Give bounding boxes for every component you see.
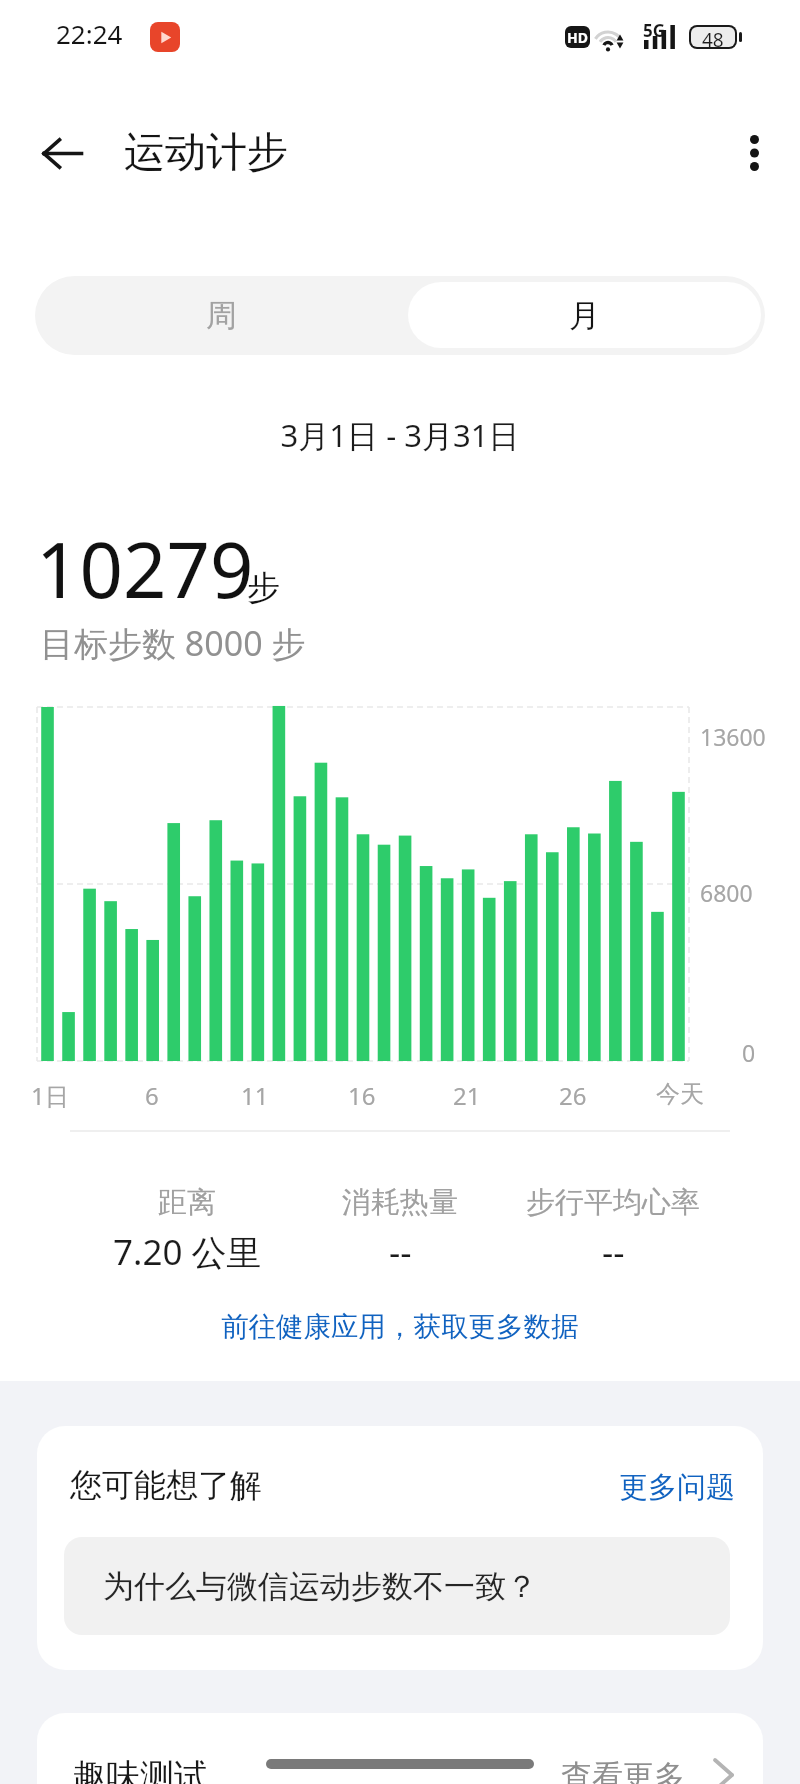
button[interactable]: 更多问题 — [611, 1461, 743, 1514]
staticText: 运动计步 — [124, 127, 288, 179]
staticText: 您可能想了解 — [70, 1465, 262, 1505]
staticText: 趣味测试 — [72, 1755, 208, 1784]
button[interactable]: 趣味测试 — [37, 1713, 763, 1784]
staticText: 1日 — [31, 1079, 69, 1112]
staticText: 13600 — [700, 721, 766, 752]
staticText: 为什么与微信运动步数不一致？ — [103, 1567, 537, 1606]
staticText: -- — [602, 1228, 625, 1276]
staticText: 26 — [559, 1079, 587, 1112]
staticText: 5G — [643, 19, 666, 42]
staticText: 16 — [348, 1079, 376, 1112]
staticText: 今天 — [656, 1079, 704, 1109]
staticText: 48 — [702, 27, 724, 47]
button[interactable]: 为什么与微信运动步数不一致？ — [64, 1537, 730, 1635]
staticText: 消耗热量 — [342, 1184, 458, 1221]
staticText: 前往健康应用，获取更多数据 — [221, 1310, 579, 1345]
button[interactable]: More options — [718, 117, 790, 189]
staticText: 3月1日 - 3月31日 — [0, 414, 800, 456]
button[interactable]: 前往健康应用，获取更多数据 — [213, 1304, 587, 1351]
staticText: 更多问题 — [619, 1469, 735, 1506]
staticText: 6 — [145, 1079, 159, 1112]
button[interactable]: 周 — [35, 276, 408, 355]
staticText: 10279 — [36, 517, 254, 621]
staticText: 11 — [241, 1079, 269, 1112]
button[interactable]: 月 — [408, 282, 761, 348]
staticText: 22:24 — [56, 16, 123, 51]
staticText: 目标步数 8000 步 — [40, 620, 306, 666]
staticText: 查看更多 — [561, 1757, 685, 1784]
staticText: 周 — [206, 296, 237, 335]
staticText: 21 — [453, 1079, 481, 1112]
staticText: HD — [567, 28, 588, 47]
button[interactable]: Back — [22, 113, 102, 193]
staticText: 0 — [742, 1037, 756, 1068]
staticText: 步 — [247, 567, 280, 609]
staticText: 距离 — [158, 1184, 216, 1221]
staticText: 步行平均心率 — [526, 1184, 700, 1221]
staticText: 月 — [569, 296, 600, 335]
staticText: 6800 — [700, 877, 753, 908]
staticText: -- — [389, 1228, 412, 1276]
staticText: 7.20 公里 — [113, 1228, 262, 1276]
